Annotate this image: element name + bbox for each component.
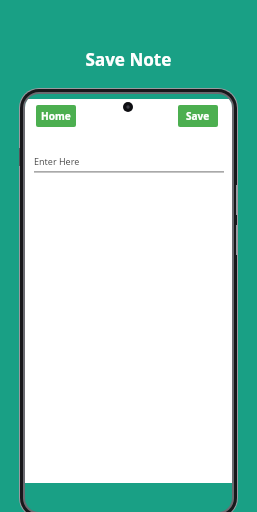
staticText: Home	[41, 109, 71, 123]
staticText: Enter Here	[34, 155, 80, 167]
staticText: Save Note	[0, 48, 257, 71]
button[interactable]: Save	[178, 105, 218, 127]
other: Front camera	[123, 102, 133, 112]
button[interactable]: Home	[36, 105, 76, 127]
staticText: Save	[186, 109, 210, 123]
button[interactable]: Enter Here	[34, 155, 224, 179]
